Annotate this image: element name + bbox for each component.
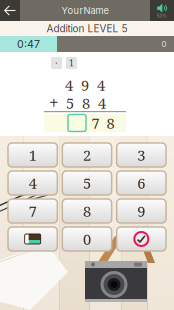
button[interactable]: Check answer bbox=[117, 227, 166, 251]
staticText: · bbox=[55, 57, 58, 69]
button[interactable]: 3 bbox=[117, 143, 166, 167]
staticText: 4 bbox=[65, 75, 73, 95]
staticText: 8 bbox=[83, 201, 91, 221]
staticText: 7 bbox=[29, 201, 37, 221]
staticText: + bbox=[49, 91, 59, 115]
button[interactable]: 2 bbox=[62, 143, 112, 167]
staticText: Addition LEVEL 5 bbox=[46, 22, 127, 35]
button[interactable]: Erase bbox=[8, 227, 57, 251]
button[interactable]: 1 bbox=[8, 143, 57, 167]
staticText: 6 bbox=[137, 173, 145, 193]
button[interactable]: 6 bbox=[117, 171, 166, 195]
button[interactable]: 0 bbox=[62, 227, 112, 251]
staticText: 0 bbox=[161, 39, 166, 49]
button[interactable]: Sound bbox=[150, 0, 174, 21]
staticText: 8 bbox=[106, 113, 114, 133]
button[interactable]: 7 bbox=[8, 199, 57, 223]
staticText: 4 bbox=[29, 173, 37, 193]
staticText: 9 bbox=[137, 201, 145, 221]
staticText: 1 bbox=[29, 145, 37, 165]
staticText: 1 bbox=[69, 57, 74, 69]
staticText: YourName bbox=[61, 5, 108, 16]
staticText: 4 bbox=[97, 75, 105, 95]
staticText: 0:47 bbox=[17, 37, 40, 50]
button[interactable]: Back bbox=[0, 0, 20, 21]
button[interactable]: 5 bbox=[62, 171, 112, 195]
staticText: 9 bbox=[81, 75, 89, 95]
staticText: 5 bbox=[66, 93, 74, 113]
staticText: 5 bbox=[83, 173, 91, 193]
staticText: 2 bbox=[83, 145, 91, 165]
staticText: 4 bbox=[98, 93, 106, 113]
staticText: 50% bbox=[156, 13, 167, 19]
staticText: 3 bbox=[137, 145, 145, 165]
button[interactable]: 4 bbox=[8, 171, 57, 195]
button[interactable]: 8 bbox=[62, 199, 112, 223]
staticText: 7 bbox=[91, 113, 99, 133]
staticText: 8 bbox=[82, 93, 90, 113]
staticText: 0 bbox=[83, 229, 91, 249]
button[interactable]: 9 bbox=[117, 199, 166, 223]
